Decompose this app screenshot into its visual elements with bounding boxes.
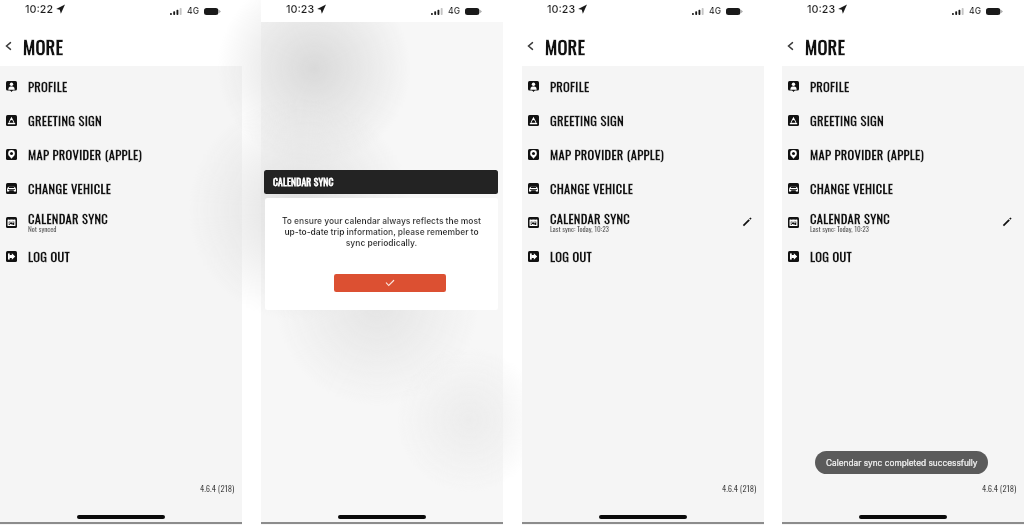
button[interactable]: CALENDAR SYNC	[0, 205, 242, 239]
staticText: MAP PROVIDER (APPLE)	[810, 145, 925, 164]
staticText: 10:23	[807, 3, 836, 16]
staticText: CALENDAR SYNC	[550, 209, 631, 228]
staticText: PROFILE	[550, 77, 590, 96]
button[interactable]: Back	[522, 24, 538, 68]
staticText: CHANGE VEHICLE	[550, 179, 634, 198]
staticText: 10:22	[25, 3, 54, 16]
staticText: 4G	[448, 6, 461, 16]
button[interactable]: Back	[782, 24, 798, 68]
staticText: MORE	[545, 33, 586, 60]
button[interactable]: GREETING SIGN	[522, 103, 764, 137]
button[interactable]: PROFILE	[782, 69, 1024, 103]
staticText: CALENDAR SYNC	[28, 209, 109, 228]
staticText: 4.6.4 (218)	[200, 482, 235, 495]
button[interactable]: Calendar sync completed successfully	[815, 451, 988, 474]
staticText: Last sync: Today, 10:23	[810, 223, 870, 234]
button[interactable]: CHANGE VEHICLE	[782, 171, 1024, 205]
button[interactable]: LOG OUT	[0, 239, 242, 273]
staticText: 4G	[969, 6, 982, 16]
button[interactable]: MAP PROVIDER (APPLE)	[782, 137, 1024, 171]
staticText: PROFILE	[810, 77, 850, 96]
staticText: CALENDAR SYNC	[810, 209, 891, 228]
button[interactable]: CALENDAR SYNC	[522, 205, 764, 239]
button[interactable]: GREETING SIGN	[0, 103, 242, 137]
staticText: CALENDAR SYNC	[273, 175, 334, 189]
button[interactable]: Edit	[996, 211, 1018, 233]
button[interactable]: LOG OUT	[782, 239, 1024, 273]
button[interactable]: Back	[0, 24, 16, 68]
staticText: 10:23	[286, 3, 315, 16]
staticText: 4G	[709, 6, 722, 16]
staticText: MAP PROVIDER (APPLE)	[550, 145, 665, 164]
staticText: MORE	[805, 33, 846, 60]
staticText: Not synced	[28, 223, 57, 234]
staticText: GREETING SIGN	[810, 111, 884, 130]
button[interactable]: CALENDAR SYNC	[782, 205, 1024, 239]
button[interactable]: LOG OUT	[522, 239, 764, 273]
staticText: MAP PROVIDER (APPLE)	[28, 145, 143, 164]
staticText: Calendar sync completed successfully	[826, 458, 978, 468]
button[interactable]: PROFILE	[522, 69, 764, 103]
button[interactable]: Confirm	[334, 274, 446, 292]
button[interactable]: Edit	[736, 211, 758, 233]
staticText: PROFILE	[28, 77, 68, 96]
button[interactable]: CHANGE VEHICLE	[0, 171, 242, 205]
staticText: 4G	[187, 6, 200, 16]
button[interactable]: GREETING SIGN	[782, 103, 1024, 137]
staticText: CHANGE VEHICLE	[810, 179, 894, 198]
staticText: CHANGE VEHICLE	[28, 179, 112, 198]
staticText: LOG OUT	[810, 247, 852, 266]
staticText: GREETING SIGN	[550, 111, 624, 130]
button[interactable]: PROFILE	[0, 69, 242, 103]
button[interactable]: CHANGE VEHICLE	[522, 171, 764, 205]
staticText: MORE	[23, 33, 64, 60]
staticText: GREETING SIGN	[28, 111, 102, 130]
staticText: LOG OUT	[550, 247, 592, 266]
staticText: 4.6.4 (218)	[722, 482, 757, 495]
staticText: 10:23	[547, 3, 576, 16]
button[interactable]: MAP PROVIDER (APPLE)	[522, 137, 764, 171]
button[interactable]: MAP PROVIDER (APPLE)	[0, 137, 242, 171]
staticText: Last sync: Today, 10:23	[550, 223, 610, 234]
staticText: 4.6.4 (218)	[982, 482, 1017, 495]
staticText: LOG OUT	[28, 247, 70, 266]
staticText: To ensure your calendar always reflects …	[278, 216, 485, 248]
